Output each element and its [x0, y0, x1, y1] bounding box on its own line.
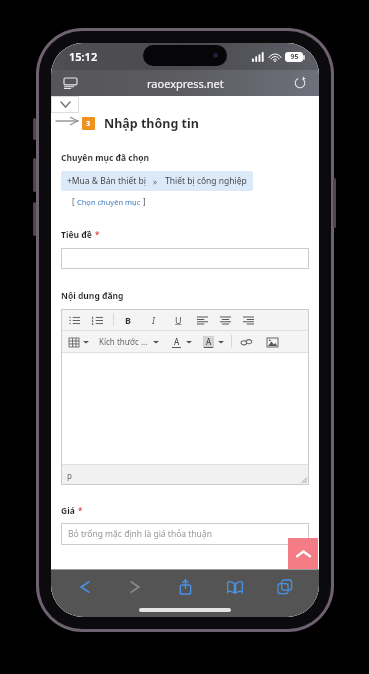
staticText: A — [174, 336, 180, 347]
button[interactable] — [61, 353, 309, 464]
button[interactable]: Kích thước ... — [99, 336, 148, 347]
staticText: U — [175, 314, 182, 326]
staticText: +Mua & Bán thiết bị — [67, 175, 146, 187]
button[interactable] — [61, 248, 309, 269]
staticText: ] — [141, 196, 146, 207]
button[interactable]: +Mua & Bán thiết bị — [61, 171, 253, 191]
button[interactable]: Share — [165, 573, 205, 601]
button[interactable]: Highlight color — [201, 335, 215, 349]
staticText: Nội dung đăng — [61, 290, 124, 302]
staticText: * — [78, 505, 83, 516]
staticText: 95 — [290, 52, 299, 62]
button[interactable]: Tabs — [265, 573, 305, 601]
staticText: Tiêu đề — [61, 229, 92, 241]
staticText: 15:12 — [69, 49, 98, 64]
button[interactable]: Back — [65, 573, 105, 601]
button[interactable]: Insert image — [265, 335, 279, 349]
button[interactable]: Bookmarks — [215, 573, 255, 601]
staticText: p — [67, 470, 72, 481]
button[interactable]: Bỏ trống mặc định là giá thỏa thuận — [61, 523, 309, 545]
staticText: Thiết bị công nghiệp — [165, 175, 247, 187]
button[interactable]: Bold — [122, 313, 134, 327]
staticText: I — [152, 314, 155, 326]
button[interactable]: [ — [72, 196, 146, 207]
button[interactable]: Insert link — [239, 335, 253, 349]
staticText: raoexpress.net — [147, 76, 224, 91]
button[interactable]: Numbered list — [90, 313, 104, 327]
button[interactable]: Text color — [169, 335, 183, 349]
button[interactable]: Scroll to top — [288, 538, 318, 569]
button[interactable]: Table — [67, 335, 81, 349]
staticText: 3 — [86, 119, 91, 129]
staticText: Bỏ trống mặc định là giá thỏa thuận — [68, 528, 212, 540]
button[interactable]: Bulleted list — [67, 313, 81, 327]
staticText: * — [95, 229, 100, 240]
button[interactable]: Forward — [115, 573, 155, 601]
button[interactable]: Align left — [195, 313, 209, 327]
staticText: B — [125, 314, 131, 326]
staticText: Nhập thông tin — [104, 115, 199, 132]
button[interactable]: Reader view — [57, 70, 83, 96]
staticText: » — [153, 176, 158, 187]
button[interactable]: Reload — [287, 70, 313, 96]
staticText: Chọn chuyên mục — [77, 197, 141, 207]
button[interactable]: Align center — [218, 313, 232, 327]
button[interactable]: Italic — [147, 313, 159, 327]
button[interactable]: Underline — [172, 313, 184, 327]
staticText: [ — [72, 196, 77, 207]
staticText: Giá — [61, 505, 75, 517]
button[interactable]: Align right — [241, 313, 255, 327]
staticText: A — [206, 336, 212, 347]
staticText: Kích thước ... — [99, 336, 148, 347]
staticText: Chuyên mục đã chọn — [61, 152, 150, 164]
